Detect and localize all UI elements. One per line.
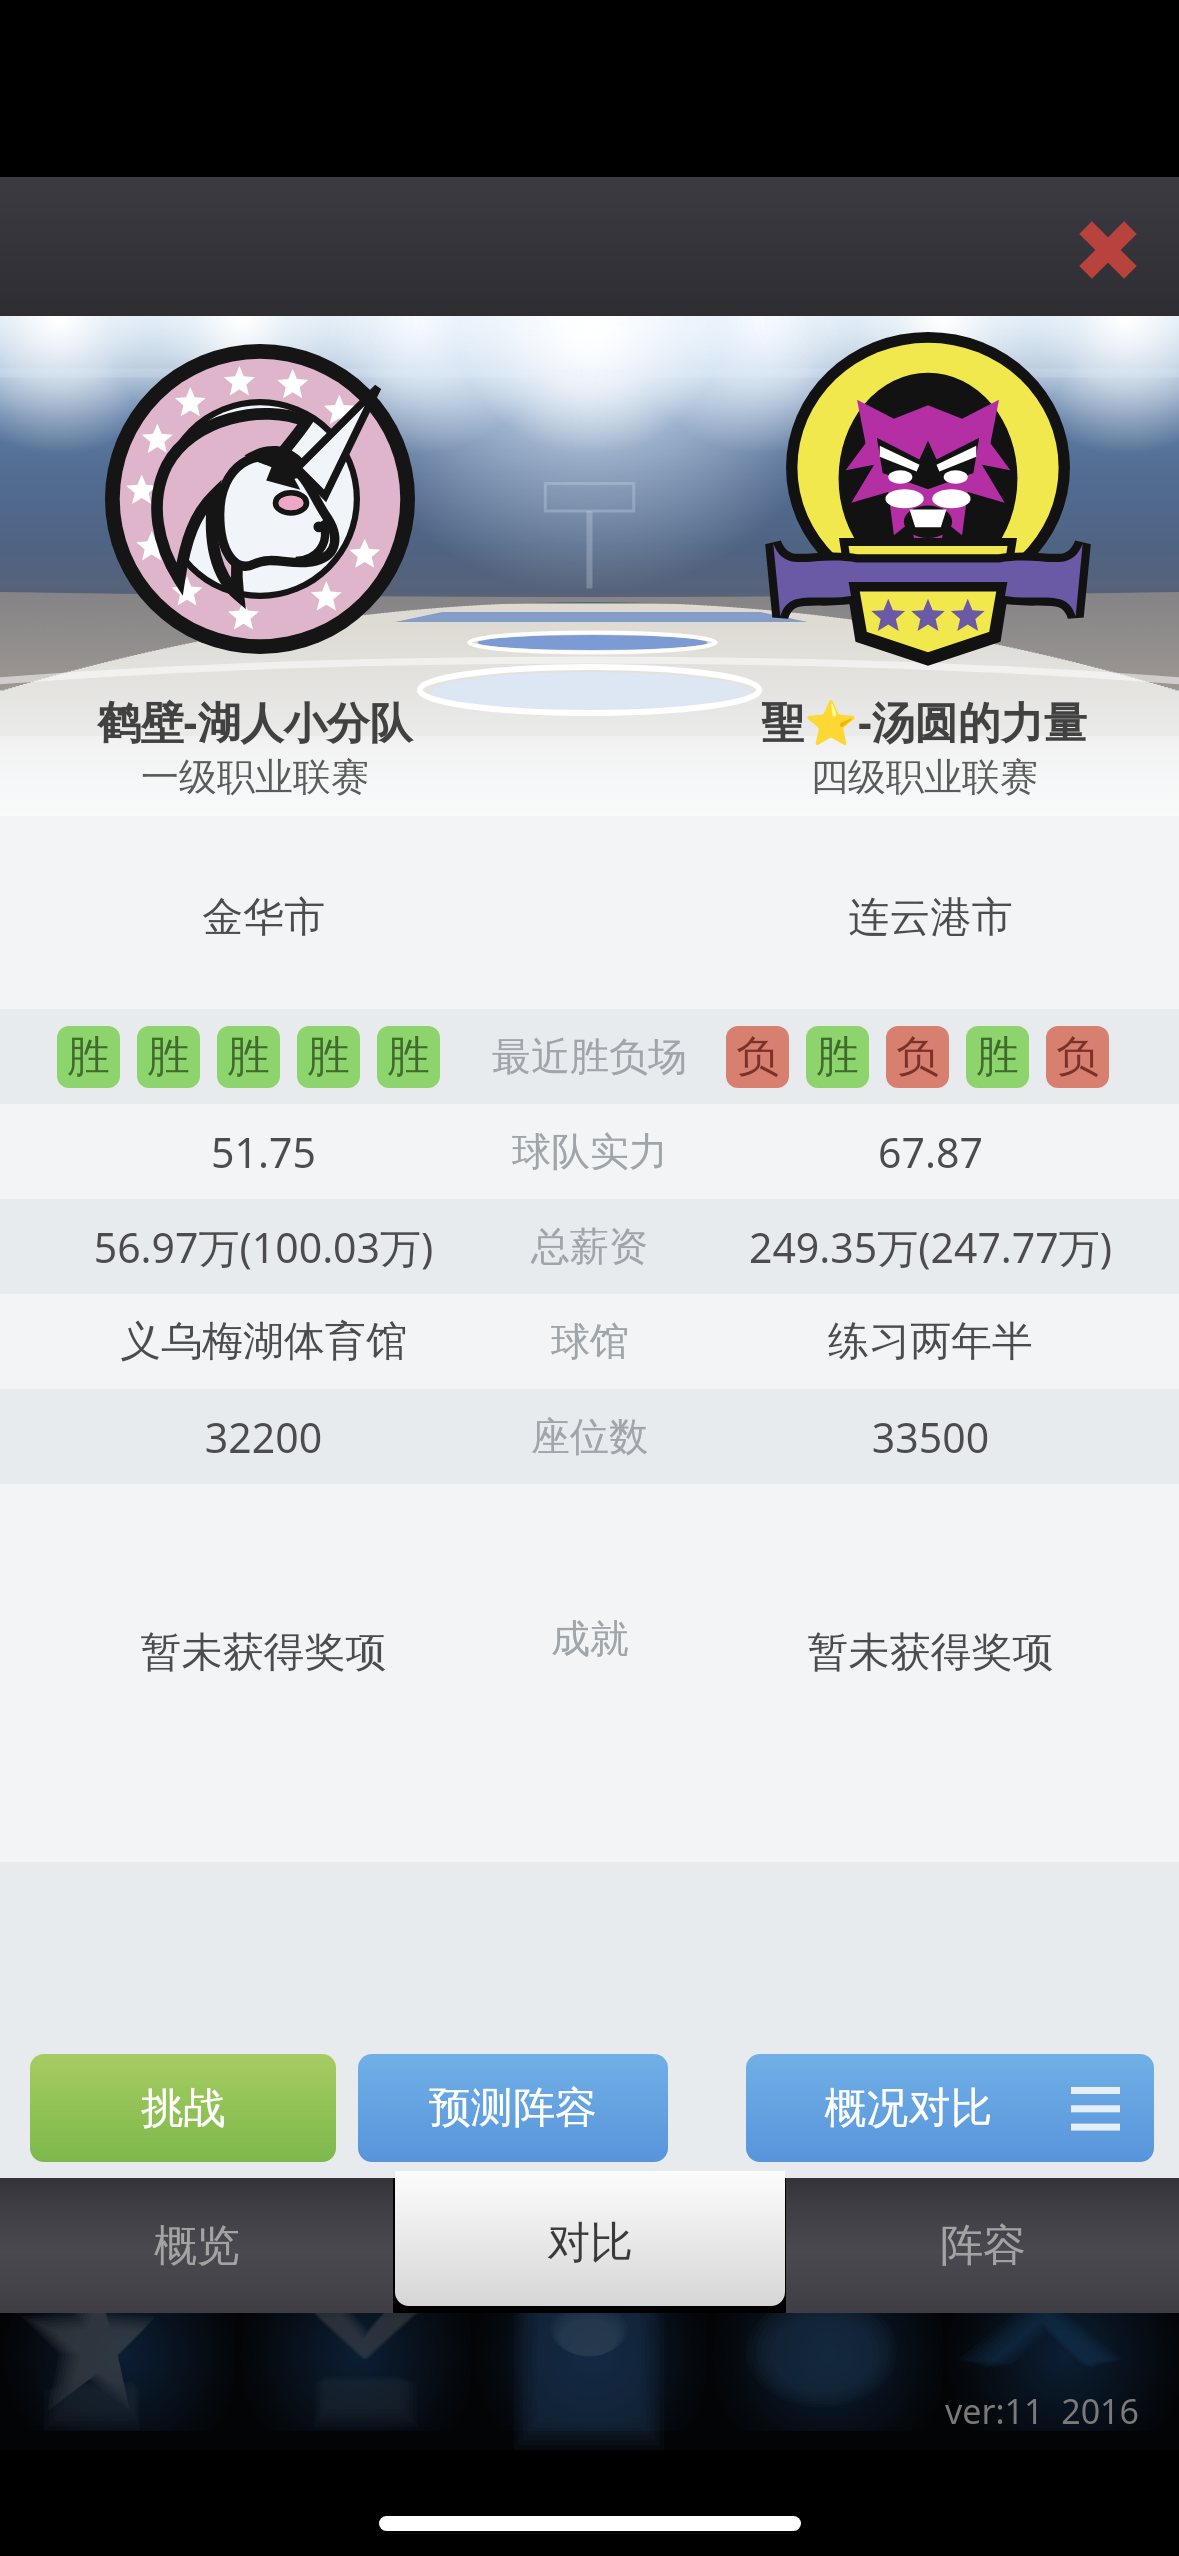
staticText: 练习两年半 bbox=[667, 1316, 1179, 1368]
staticText: 座位数 bbox=[531, 1412, 648, 1461]
button[interactable]: Nav tab 1 bbox=[0, 2313, 235, 2450]
staticText: 负 bbox=[736, 1030, 779, 1084]
staticText: 胜 bbox=[67, 1030, 110, 1084]
button[interactable]: Nav tab 5 bbox=[943, 2313, 1179, 2450]
staticText: 金华市 bbox=[0, 892, 527, 944]
staticText: 概览 bbox=[154, 2219, 240, 2273]
staticText: 四级职业联赛 bbox=[669, 753, 1179, 801]
button[interactable]: 挑战 bbox=[30, 2054, 336, 2162]
staticText: 鹤壁-湖人小分队 bbox=[0, 692, 510, 751]
staticText: 连云港市 bbox=[667, 892, 1179, 944]
staticText: 胜 bbox=[816, 1030, 859, 1084]
staticText: 67.87 bbox=[667, 1124, 1179, 1180]
staticText: 成就 bbox=[551, 1614, 629, 1663]
button[interactable]: Close bbox=[1045, 187, 1171, 313]
staticText: 胜 bbox=[976, 1030, 1019, 1084]
staticText: 球队实力 bbox=[512, 1127, 668, 1176]
staticText: 33500 bbox=[667, 1409, 1179, 1465]
staticText: 56.97万(100.03万) bbox=[0, 1219, 527, 1275]
staticText: 暂未获得奖项 bbox=[0, 1627, 527, 1679]
staticText: 249.35万(247.77万) bbox=[667, 1219, 1179, 1275]
button[interactable]: 概览 bbox=[0, 2178, 393, 2313]
staticText: 最近胜负场 bbox=[492, 1032, 687, 1081]
button[interactable]: 阵容 bbox=[786, 2178, 1179, 2313]
staticText: 预测阵容 bbox=[429, 2082, 597, 2135]
staticText: 义乌梅湖体育馆 bbox=[0, 1316, 527, 1368]
button[interactable]: 对比 bbox=[395, 2171, 785, 2306]
staticText: 32200 bbox=[0, 1409, 527, 1465]
staticText: 一级职业联赛 bbox=[0, 753, 510, 801]
button[interactable]: Nav tab 3 bbox=[471, 2313, 707, 2450]
button[interactable]: 概况对比 bbox=[746, 2054, 1154, 2162]
staticText: 胜 bbox=[227, 1030, 270, 1084]
staticText: 球馆 bbox=[551, 1317, 629, 1366]
staticText: 胜 bbox=[307, 1030, 350, 1084]
staticText: 总薪资 bbox=[531, 1222, 648, 1271]
button[interactable]: Nav tab 2 bbox=[235, 2313, 471, 2450]
staticText: 胜 bbox=[387, 1030, 430, 1084]
button[interactable]: Nav tab 4 bbox=[707, 2313, 943, 2450]
staticText: 负 bbox=[896, 1030, 939, 1084]
staticText: 阵容 bbox=[940, 2219, 1026, 2273]
staticText: 暂未获得奖项 bbox=[667, 1627, 1179, 1679]
staticText: ver:11 2016 bbox=[945, 2388, 1139, 2434]
staticText: 对比 bbox=[547, 2216, 633, 2270]
staticText: 挑战 bbox=[141, 2082, 225, 2135]
staticText: 聖⭐-汤圆的力量 bbox=[669, 692, 1179, 751]
staticText: 概况对比 bbox=[746, 2082, 1071, 2135]
staticText: 负 bbox=[1056, 1030, 1099, 1084]
staticText: 51.75 bbox=[0, 1124, 527, 1180]
button[interactable]: 预测阵容 bbox=[358, 2054, 668, 2162]
staticText: 胜 bbox=[147, 1030, 190, 1084]
